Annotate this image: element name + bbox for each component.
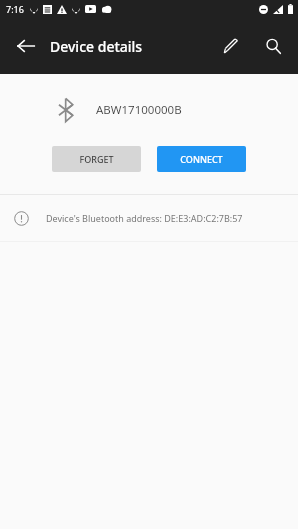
button[interactable]: FORGET: [52, 146, 141, 172]
staticText: 7:16: [6, 3, 24, 15]
button[interactable]: Device's Bluetooth address: DE:E3:AD:C2:…: [0, 195, 298, 241]
button[interactable]: Search: [252, 25, 294, 67]
button[interactable]: Edit: [210, 25, 252, 67]
staticText: FORGET: [79, 153, 114, 165]
staticText: ABW17100000B: [96, 102, 182, 118]
staticText: CONNECT: [180, 153, 223, 165]
button[interactable]: CONNECT: [157, 146, 246, 172]
staticText: Device's Bluetooth address: DE:E3:AD:C2:…: [46, 212, 243, 224]
staticText: Device details: [50, 37, 143, 56]
button[interactable]: Back: [4, 24, 48, 68]
